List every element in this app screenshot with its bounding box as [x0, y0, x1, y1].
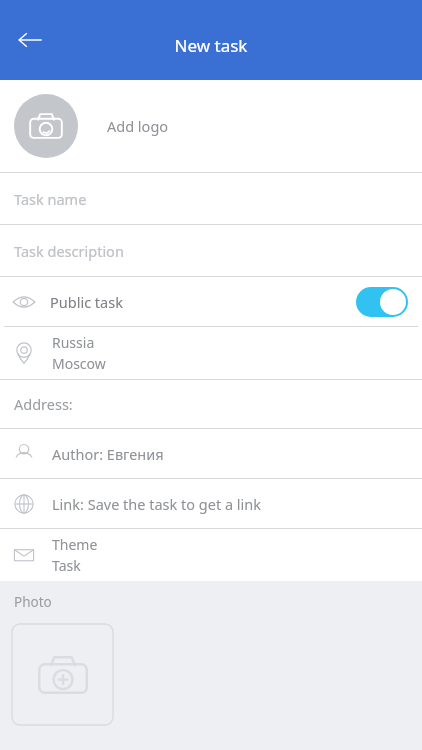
staticText: Task	[52, 556, 81, 575]
button[interactable]: Address:	[0, 380, 422, 428]
button[interactable]: Author: Евгения	[0, 429, 422, 478]
staticText: Add logo	[107, 116, 169, 136]
staticText: Theme	[52, 535, 98, 554]
button[interactable]: Add photo	[12, 624, 113, 725]
staticText: Photo	[14, 593, 52, 611]
button[interactable]: Public task	[0, 277, 422, 326]
button[interactable]: Russia	[0, 327, 422, 379]
staticText: Author: Евгения	[52, 444, 164, 464]
staticText: Russia	[52, 333, 95, 352]
button[interactable]: Add logo	[0, 80, 422, 172]
staticText: Address:	[14, 394, 73, 414]
staticText: Task description	[14, 241, 124, 261]
staticText: Task name	[14, 189, 87, 209]
button[interactable]: Back	[4, 14, 56, 66]
button[interactable]: Task description	[0, 225, 422, 276]
button[interactable]: Theme	[0, 529, 422, 581]
button[interactable]: Public task toggle	[356, 287, 408, 317]
staticText: Moscow	[52, 354, 106, 373]
button[interactable]: Task name	[0, 173, 422, 224]
staticText: New task	[0, 34, 422, 57]
button[interactable]: Link: Save the task to get a link	[0, 479, 422, 528]
staticText: Link: Save the task to get a link	[52, 494, 262, 514]
staticText: Public task	[50, 292, 123, 312]
